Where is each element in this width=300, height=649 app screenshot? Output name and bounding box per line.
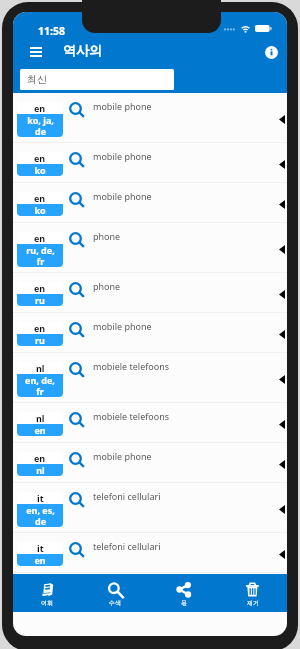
staticText: en: [34, 554, 46, 566]
staticText: mobile phone: [93, 320, 152, 332]
staticText: ru: [35, 334, 45, 346]
button[interactable]: nl: [13, 403, 287, 443]
staticText: mobile phone: [93, 190, 152, 202]
staticText: phone: [93, 230, 121, 242]
staticText: ru, de, fr: [26, 244, 55, 267]
button[interactable]: en: [13, 93, 287, 143]
staticText: telefoni cellulari: [93, 540, 161, 552]
staticText: en: [34, 424, 46, 436]
button[interactable]: en: [13, 183, 287, 223]
button[interactable]: Menu: [21, 40, 51, 64]
button[interactable]: Info: [259, 40, 283, 64]
staticText: en, de, fr: [25, 374, 55, 397]
button[interactable]: en: [13, 143, 287, 183]
button[interactable]: nl: [13, 353, 287, 403]
staticText: en: [34, 452, 46, 464]
staticText: 역사의: [63, 42, 102, 58]
staticText: it: [37, 542, 44, 554]
staticText: ko: [34, 164, 46, 176]
staticText: 11:58: [38, 24, 65, 38]
button[interactable]: Delete: [218, 574, 287, 612]
staticText: en: [34, 102, 46, 114]
button[interactable]: Share: [149, 574, 218, 612]
button[interactable]: 최신: [20, 69, 174, 90]
staticText: ko, ja, de: [27, 114, 54, 137]
staticText: en, es, de: [26, 504, 55, 527]
staticText: en: [34, 322, 46, 334]
staticText: nl: [36, 412, 45, 424]
button[interactable]: it: [13, 483, 287, 533]
staticText: 몫: [181, 599, 187, 607]
staticText: en: [34, 282, 46, 294]
staticText: 수색: [109, 599, 121, 607]
staticText: mobile phone: [93, 150, 152, 162]
staticText: nl: [36, 362, 45, 374]
staticText: mobile phone: [93, 100, 152, 112]
staticText: 최신: [27, 73, 47, 86]
staticText: nl: [36, 464, 45, 476]
button[interactable]: en: [13, 443, 287, 483]
staticText: phone: [93, 280, 121, 292]
button[interactable]: en: [13, 223, 287, 273]
staticText: ru: [35, 294, 45, 306]
button[interactable]: it: [13, 533, 287, 573]
staticText: mobiele telefoons: [93, 410, 170, 422]
staticText: mobile phone: [93, 450, 152, 462]
button[interactable]: en: [13, 313, 287, 353]
button[interactable]: en: [13, 273, 287, 313]
staticText: en: [34, 232, 46, 244]
staticText: 어휘: [41, 599, 53, 607]
staticText: 제거: [247, 599, 259, 607]
button[interactable]: Vocabulary: [13, 574, 81, 612]
staticText: ko: [34, 204, 46, 216]
staticText: mobiele telefoons: [93, 360, 170, 372]
staticText: it: [37, 492, 44, 504]
staticText: en: [34, 192, 46, 204]
button[interactable]: Search: [81, 574, 149, 612]
staticText: en: [34, 152, 46, 164]
staticText: telefoni cellulari: [93, 490, 161, 502]
